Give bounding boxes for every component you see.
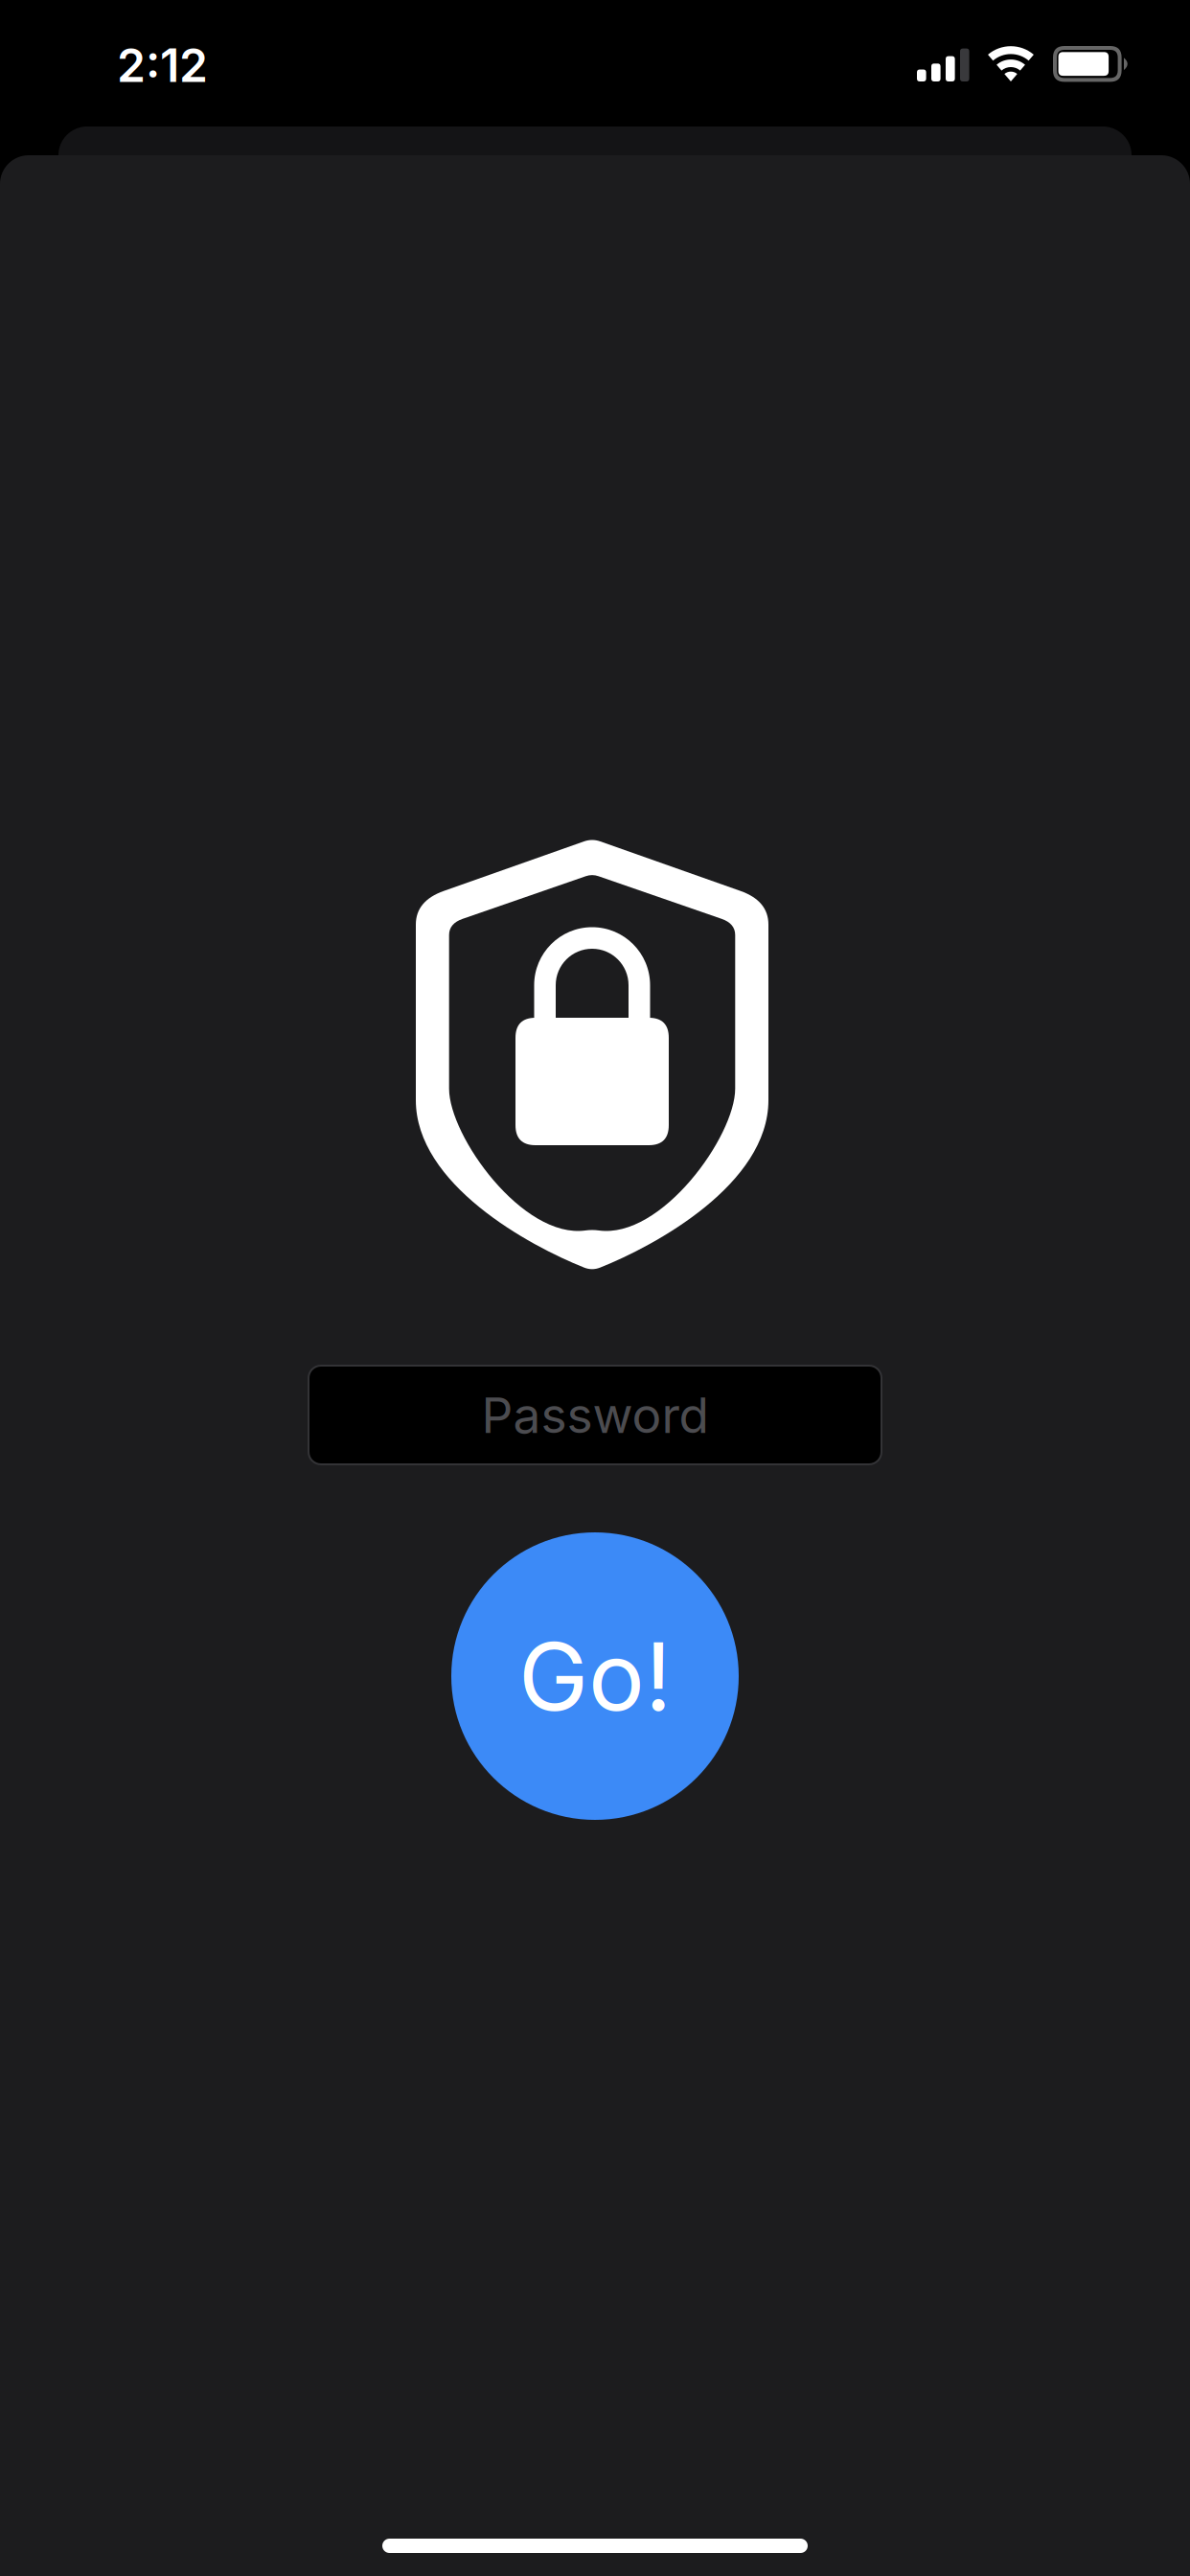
staticText: 2:12 bbox=[117, 37, 208, 93]
staticText: Go! bbox=[518, 1619, 672, 1733]
staticText: Password bbox=[481, 1385, 709, 1445]
button[interactable]: Go! bbox=[451, 1532, 739, 1820]
button[interactable]: Password bbox=[309, 1366, 881, 1464]
